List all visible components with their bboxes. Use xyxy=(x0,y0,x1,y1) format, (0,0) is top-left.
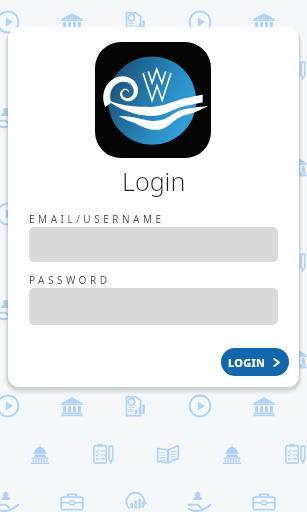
staticText: Login xyxy=(122,164,186,198)
button[interactable]: LOGIN xyxy=(221,348,289,376)
staticText: LOGIN xyxy=(228,355,266,370)
staticText: EMAIL/USERNAME xyxy=(29,212,165,226)
staticText: PASSWORD xyxy=(29,273,111,287)
